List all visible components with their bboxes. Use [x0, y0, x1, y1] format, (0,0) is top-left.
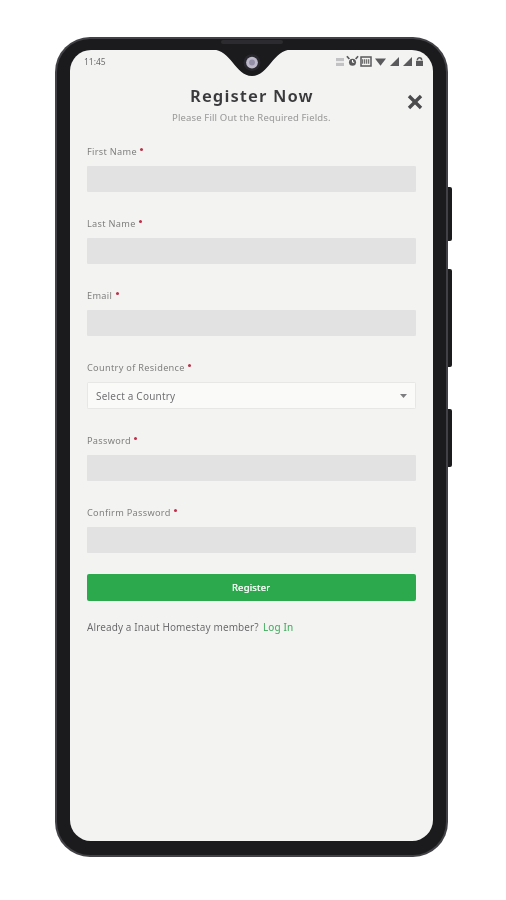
button[interactable]: Select a Country — [87, 382, 416, 409]
staticText: Last Name — [87, 217, 136, 230]
staticText: Country of Residence — [87, 361, 185, 374]
button[interactable]: Close — [397, 84, 433, 120]
staticText: Log In — [263, 620, 294, 634]
staticText: Confirm Password — [87, 506, 171, 519]
staticText: Already a Inaut Homestay member? — [87, 620, 259, 634]
staticText: Please Fill Out the Required Fields. — [172, 111, 331, 124]
staticText: Password — [87, 434, 131, 447]
staticText: 11:45 — [84, 56, 106, 68]
staticText: Email — [87, 289, 113, 302]
button[interactable]: Log In — [263, 620, 294, 634]
staticText: Register Now — [190, 84, 314, 106]
staticText: Register — [232, 581, 271, 594]
staticText: Select a Country — [96, 389, 176, 403]
staticText: First Name — [87, 145, 137, 158]
button[interactable]: Register — [87, 574, 416, 601]
